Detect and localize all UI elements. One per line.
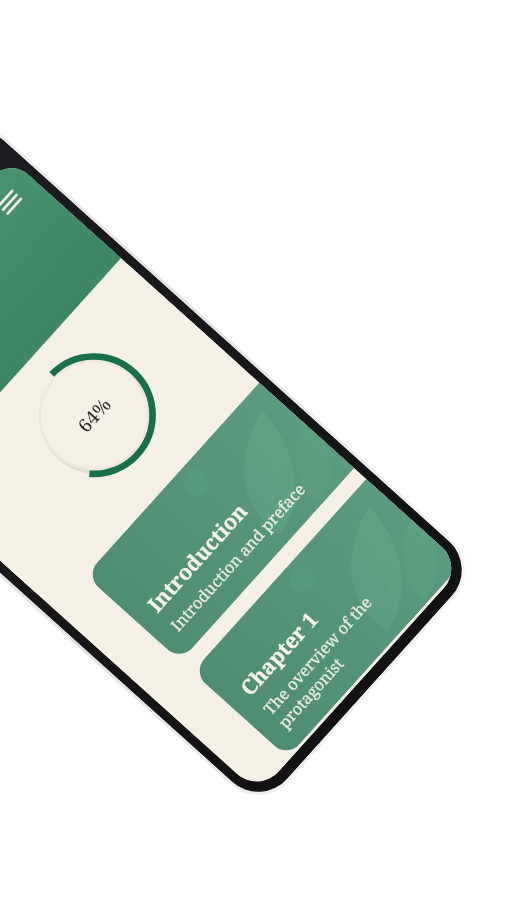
staticText: 64% [71,392,117,438]
button[interactable]: 64% [5,326,183,504]
staticText: Chapter 1 [234,605,325,702]
staticText: Introduction [141,497,254,618]
staticText: Introduction and preface [166,478,310,636]
button[interactable]: Introduction [85,382,354,661]
button[interactable]: Menu [0,179,34,227]
button[interactable]: Chapter 1 [192,479,461,758]
staticText: The overview of the protagonist [258,592,391,732]
